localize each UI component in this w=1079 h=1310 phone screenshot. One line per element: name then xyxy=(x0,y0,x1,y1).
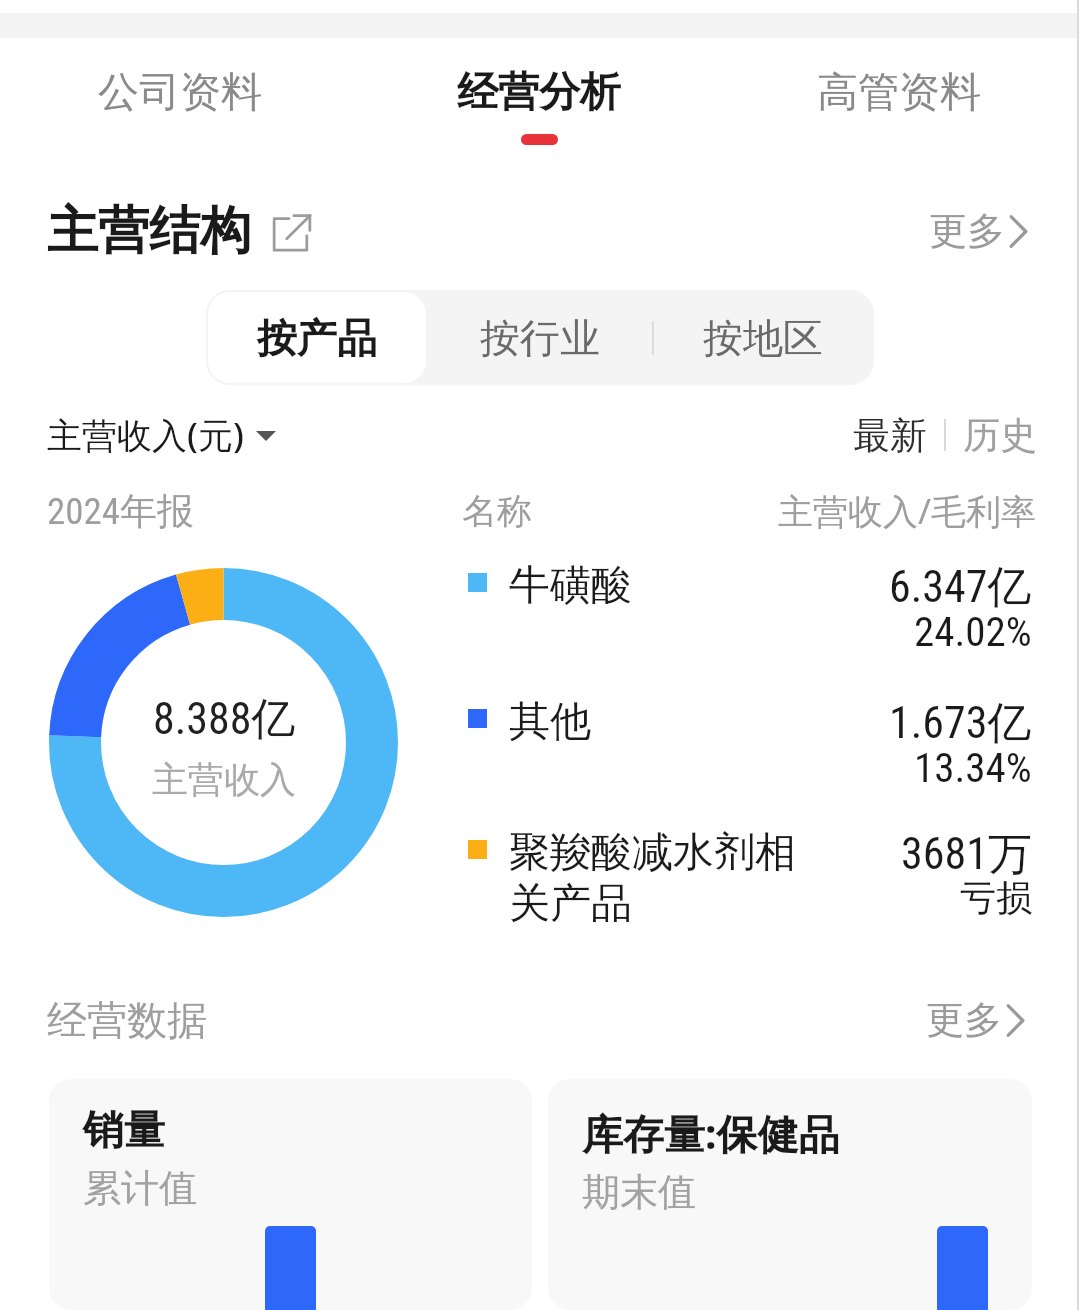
button[interactable]: 销量 xyxy=(49,1079,532,1310)
staticText: 主营收入(元) xyxy=(47,411,244,459)
button[interactable]: 最新 xyxy=(853,412,927,459)
staticText: 8.388亿 xyxy=(153,692,296,747)
staticText: 亏损 xyxy=(960,875,1032,920)
button[interactable]: 主营收入(元) xyxy=(47,411,276,459)
staticText: 历史 xyxy=(963,412,1037,459)
button[interactable]: 按地区 xyxy=(651,290,874,385)
staticText: 库存量:保健品 xyxy=(582,1105,840,1161)
staticText: 主营结构 xyxy=(47,199,251,263)
button[interactable]: 经营分析 xyxy=(359,31,719,151)
staticText: 3681万 xyxy=(901,827,1032,882)
staticText: 主营收入 xyxy=(152,757,296,802)
staticText: 期末值 xyxy=(582,1168,696,1216)
staticText: 经营分析 xyxy=(457,67,621,119)
staticText: 1.673亿 xyxy=(889,696,1032,751)
button[interactable]: 库存量:保健品 xyxy=(548,1079,1032,1310)
staticText: 6.347亿 xyxy=(889,560,1032,615)
staticText: 其他 xyxy=(509,696,809,748)
button[interactable]: 公司资料 xyxy=(0,31,359,151)
button[interactable]: 按行业 xyxy=(428,290,651,385)
staticText: 累计值 xyxy=(83,1164,197,1212)
staticText: 聚羧酸减水剂相关产品 xyxy=(509,827,809,929)
staticText: 主营收入/毛利率 xyxy=(778,487,1037,535)
staticText: 按行业 xyxy=(480,313,600,363)
staticText: 按地区 xyxy=(703,313,823,363)
staticText: 高管资料 xyxy=(817,67,981,119)
staticText: 销量 xyxy=(83,1105,165,1157)
button[interactable]: 历史 xyxy=(963,412,1037,459)
staticText: 牛磺酸 xyxy=(509,560,809,612)
staticText: 更多 xyxy=(926,996,1002,1044)
staticText: 24.02% xyxy=(914,608,1032,656)
staticText: 更多 xyxy=(929,207,1005,255)
staticText: 按产品 xyxy=(257,313,377,363)
button[interactable]: 按产品 xyxy=(208,292,426,383)
staticText: 2024年报 xyxy=(47,488,195,535)
staticText: 名称 xyxy=(462,489,532,533)
staticText: 经营数据 xyxy=(47,995,207,1045)
button[interactable]: 更多 xyxy=(926,996,1027,1044)
button[interactable]: 打开主营结构详情 xyxy=(273,213,311,251)
staticText: 公司资料 xyxy=(98,67,262,119)
staticText: 最新 xyxy=(853,412,927,459)
button[interactable]: 更多 xyxy=(929,207,1030,255)
staticText: 13.34% xyxy=(914,744,1032,792)
button[interactable]: 高管资料 xyxy=(719,31,1079,151)
